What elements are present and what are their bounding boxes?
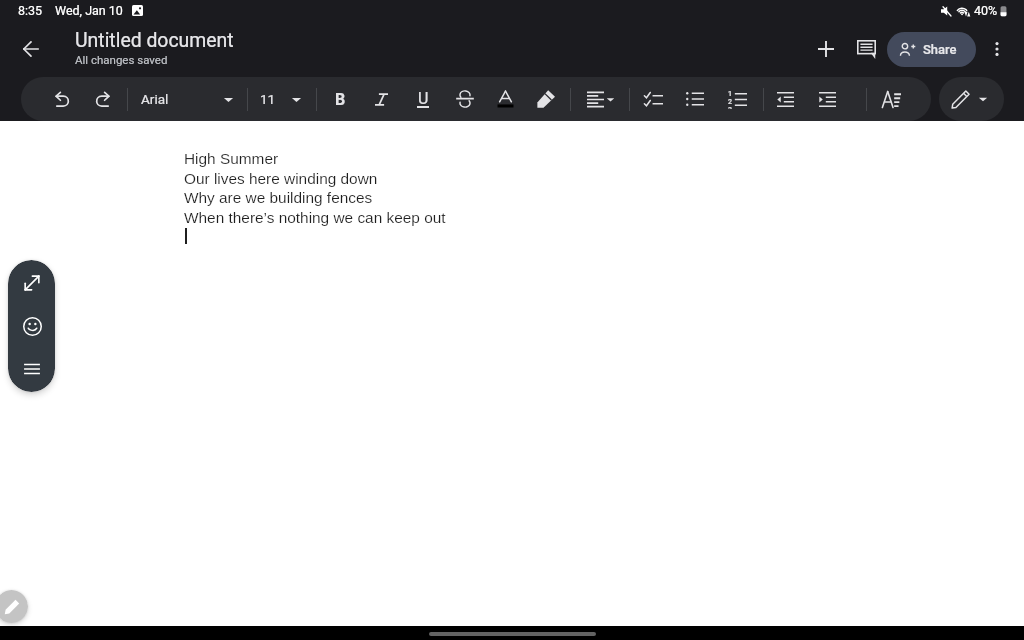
staticText: Share — [923, 42, 957, 57]
button[interactable]: Italic — [364, 82, 398, 116]
staticText: 11 — [260, 91, 276, 107]
button[interactable]: Arial — [141, 82, 169, 116]
button[interactable]: Font — [211, 82, 245, 116]
button[interactable]: Editing mode — [939, 77, 1004, 121]
button[interactable]: Decrease indent — [768, 82, 802, 116]
button[interactable]: Font size — [279, 82, 313, 116]
button[interactable]: Increase indent — [810, 82, 844, 116]
button[interactable]: Share — [887, 32, 976, 67]
staticText: High Summer — [184, 150, 279, 167]
staticText: 1 — [728, 90, 732, 98]
staticText: Untitled document — [75, 29, 234, 52]
staticText: Our lives here winding down — [184, 170, 378, 187]
button[interactable]: Edit — [0, 590, 28, 623]
button[interactable]: Numbered list — [720, 82, 754, 116]
staticText: All changes saved — [75, 53, 168, 66]
button[interactable]: Insert — [806, 29, 846, 69]
staticText: Why are we building fences — [184, 189, 373, 206]
staticText: Arial — [141, 91, 169, 107]
button[interactable]: More — [12, 349, 52, 389]
staticText: 8:35 — [18, 3, 43, 18]
staticText: B — [335, 90, 346, 109]
button[interactable]: Text color — [488, 82, 522, 116]
button[interactable]: Text alignment — [578, 82, 612, 116]
button[interactable]: Strikethrough — [448, 82, 482, 116]
staticText: 2 — [728, 98, 732, 106]
button[interactable]: Highlight color — [529, 82, 563, 116]
button[interactable]: Comments — [846, 29, 886, 69]
button[interactable]: Alignment options — [593, 82, 627, 116]
button[interactable]: 11 — [260, 82, 276, 116]
staticText: 40% — [974, 3, 998, 18]
button[interactable]: U — [408, 84, 438, 114]
staticText: Wed, Jan 10 — [55, 3, 123, 18]
button[interactable]: Checklist — [636, 82, 670, 116]
button[interactable]: B — [325, 84, 355, 114]
button[interactable]: Undo — [45, 82, 79, 116]
button[interactable]: Redo — [85, 82, 119, 116]
button[interactable]: Expand — [12, 263, 52, 303]
button[interactable]: Back — [11, 29, 51, 69]
button[interactable]: More options — [977, 29, 1017, 69]
staticText: U — [418, 89, 429, 108]
button[interactable]: Bulleted list — [678, 82, 712, 116]
button[interactable]: Text style — [874, 82, 908, 116]
staticText: When there’s nothing we can keep out — [184, 209, 446, 226]
staticText: 3 — [728, 106, 732, 109]
button[interactable]: Insert emoji — [12, 306, 52, 346]
